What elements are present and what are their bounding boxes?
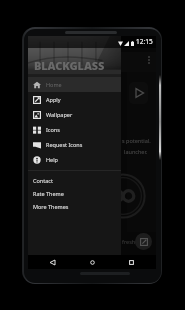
staticText: BLACKGLASS xyxy=(34,58,105,73)
staticText: freshen xyxy=(122,238,142,245)
button[interactable]: Wallpaper xyxy=(28,107,121,122)
button[interactable]: More options xyxy=(143,54,155,66)
button[interactable]: Contact xyxy=(28,174,121,187)
staticText: 12:15 xyxy=(136,37,153,46)
staticText: Contact xyxy=(33,177,53,184)
staticText: Help xyxy=(46,156,58,163)
staticText: launcher. xyxy=(124,148,148,155)
button[interactable]: Play Store xyxy=(129,82,148,104)
button[interactable]: Recents xyxy=(117,255,146,269)
staticText: Home xyxy=(46,81,62,88)
staticText: Rate Theme xyxy=(33,190,64,197)
staticText: Apply xyxy=(46,96,61,103)
button[interactable]: Apply xyxy=(28,92,121,107)
button[interactable]: Request Icons xyxy=(28,137,121,152)
button[interactable]: Rate Theme xyxy=(28,187,121,200)
staticText: Request Icons xyxy=(46,141,83,148)
button[interactable]: Icons xyxy=(28,122,121,137)
button[interactable]: Help xyxy=(28,152,121,167)
button[interactable]: Apply theme xyxy=(135,233,152,250)
button[interactable]: Home xyxy=(28,77,121,92)
button[interactable]: More Themes xyxy=(28,200,121,213)
button[interactable]: Home xyxy=(78,255,107,269)
staticText: More Themes xyxy=(33,203,69,210)
staticText: s potential. xyxy=(122,137,151,144)
staticText: Wallpaper xyxy=(46,111,73,118)
staticText: Icons xyxy=(46,126,60,133)
button[interactable]: Back xyxy=(38,255,67,269)
